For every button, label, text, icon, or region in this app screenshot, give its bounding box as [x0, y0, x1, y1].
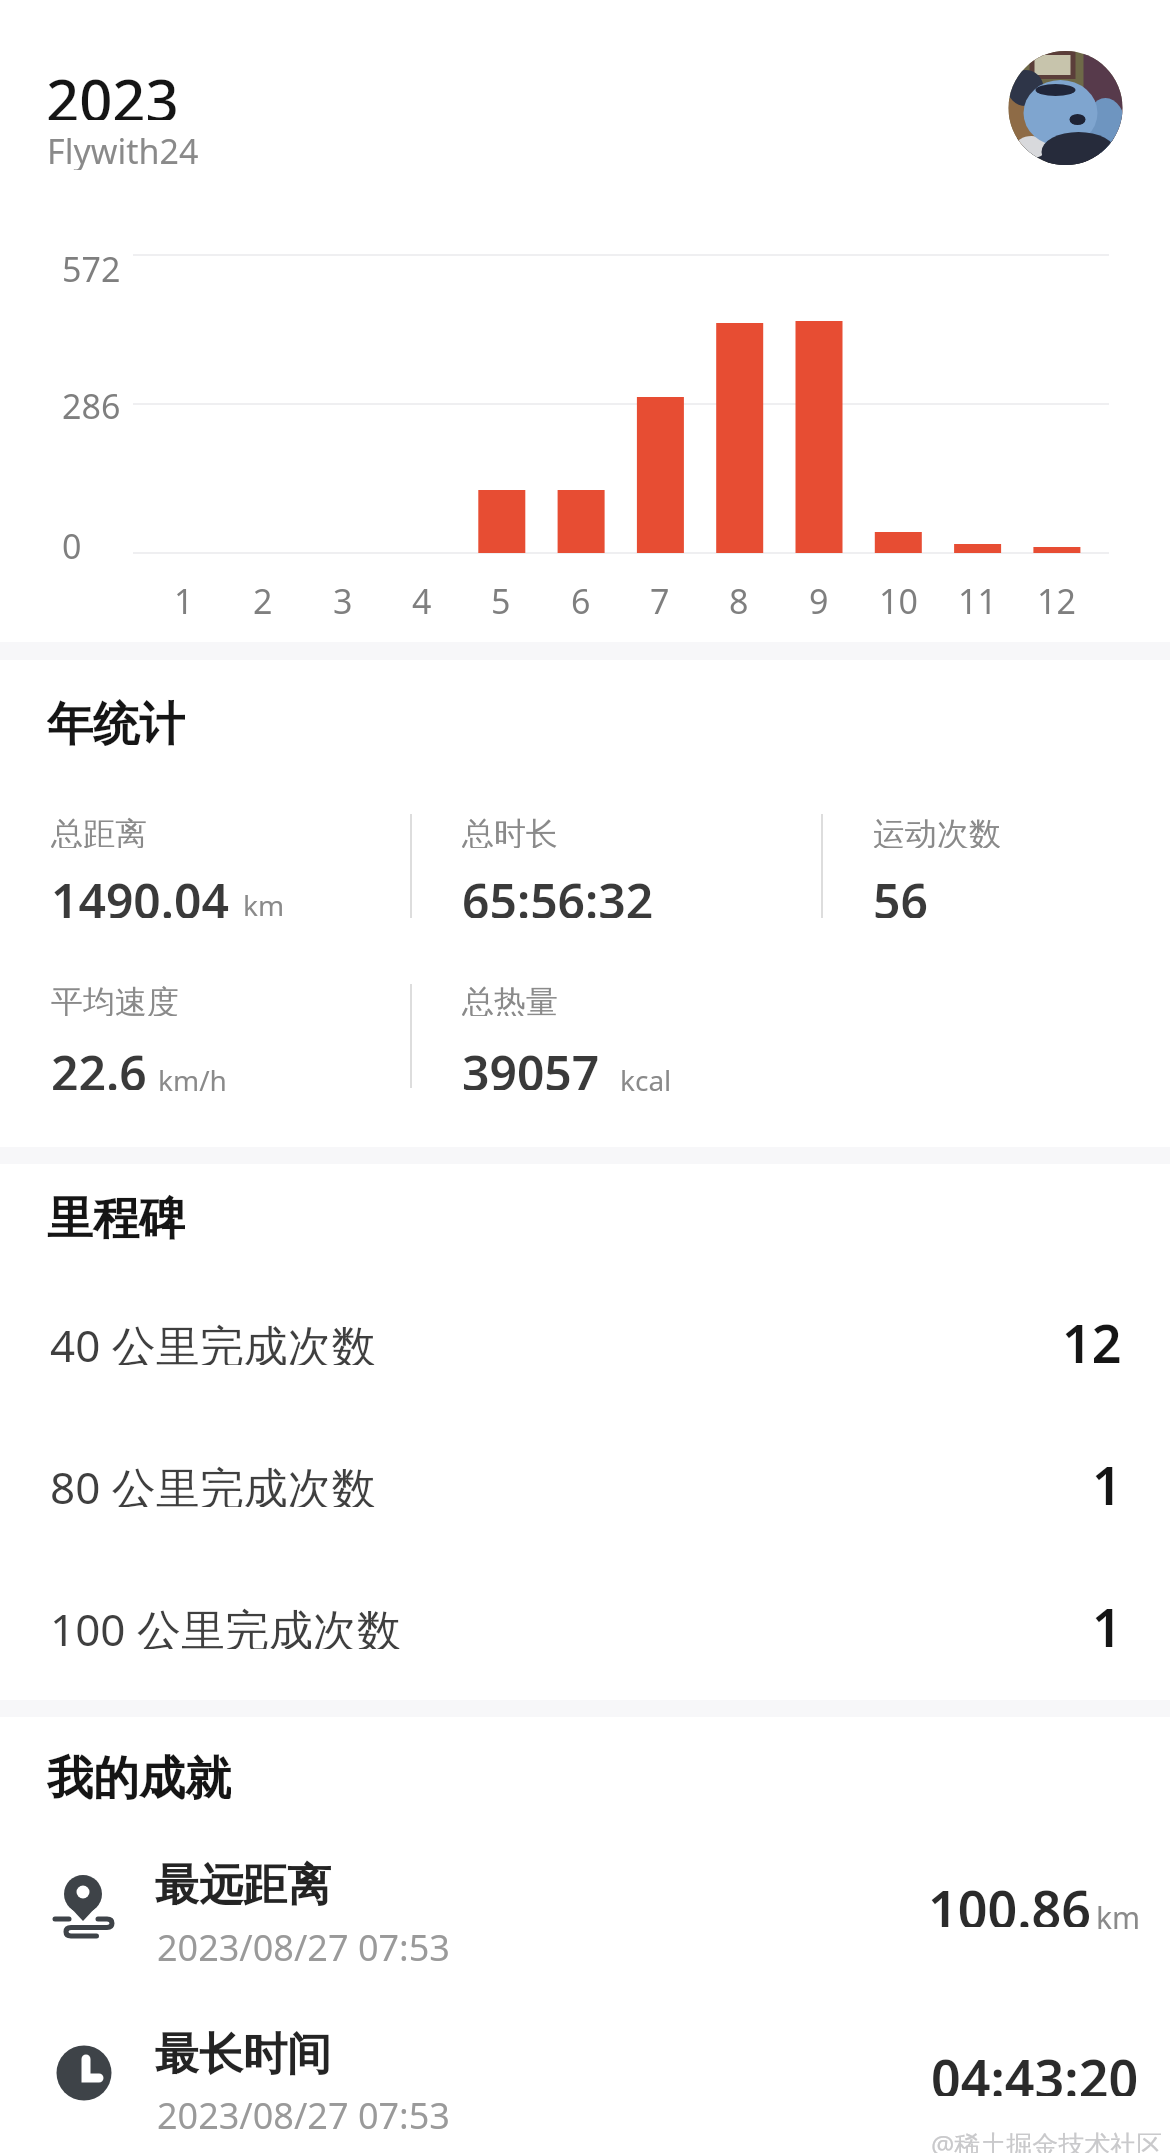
button[interactable]: 最远距离 — [155, 1858, 555, 1908]
staticText: @稀土掘金技术社区 — [931, 2126, 1163, 2153]
staticText: 39057 — [462, 1040, 600, 1090]
button[interactable]: 80 公里完成次数 — [50, 1457, 750, 1507]
staticText: 572 — [62, 246, 121, 290]
staticText: 8 — [729, 578, 749, 622]
staticText: 65:56:32 — [462, 868, 654, 918]
staticText: 5 — [491, 578, 511, 622]
button[interactable]: 最长时间 — [155, 2027, 555, 2077]
staticText: 里程碑 — [47, 1190, 185, 1240]
staticText: 总热量 — [462, 982, 558, 1016]
staticText: 12 — [1037, 578, 1076, 622]
staticText: 1 — [174, 578, 194, 622]
staticText: 100 公里完成次数 — [50, 1599, 401, 1649]
staticText: km — [243, 886, 285, 918]
staticText: 总时长 — [462, 814, 558, 848]
staticText: 2 — [253, 578, 273, 622]
staticText: 平均速度 — [51, 982, 179, 1016]
staticText: 286 — [62, 383, 121, 427]
staticText: 2023 — [46, 60, 179, 120]
staticText: Flywith24 — [47, 128, 199, 170]
staticText: 最长时间 — [155, 2027, 331, 2077]
staticText: 运动次数 — [873, 814, 1001, 848]
staticText: 04:43:20 — [931, 2042, 1139, 2096]
staticText: 22.6 — [51, 1040, 147, 1090]
staticText: 40 公里完成次数 — [50, 1315, 376, 1365]
staticText: 100.86 — [928, 1873, 1092, 1927]
staticText: 7 — [650, 578, 670, 622]
staticText: 0 — [62, 523, 82, 567]
staticText: 总距离 — [51, 814, 147, 848]
staticText: 12 — [1062, 1307, 1122, 1367]
staticText: 4 — [412, 578, 432, 622]
staticText: 年统计 — [47, 696, 185, 746]
staticText: 6 — [571, 578, 591, 622]
staticText: 1490.04 — [51, 868, 229, 918]
staticText: 我的成就 — [47, 1750, 231, 1800]
staticText: 3 — [333, 578, 353, 622]
staticText: 最远距离 — [155, 1858, 331, 1908]
staticText: 1 — [1092, 1449, 1122, 1509]
staticText: 11 — [958, 578, 997, 622]
staticText: kcal — [620, 1061, 672, 1093]
staticText: 2023/08/27 07:53 — [157, 1923, 450, 1961]
button[interactable]: 100 公里完成次数 — [50, 1599, 750, 1649]
staticText: 2023/08/27 07:53 — [157, 2091, 450, 2129]
staticText: km — [1096, 1897, 1141, 1931]
staticText: 56 — [873, 868, 928, 918]
button[interactable]: 40 公里完成次数 — [50, 1315, 750, 1365]
staticText: 10 — [879, 578, 918, 622]
staticText: 80 公里完成次数 — [50, 1457, 376, 1507]
staticText: 9 — [809, 578, 829, 622]
button[interactable] — [1008, 51, 1122, 165]
staticText: km/h — [158, 1061, 227, 1093]
staticText: 1 — [1092, 1591, 1122, 1651]
